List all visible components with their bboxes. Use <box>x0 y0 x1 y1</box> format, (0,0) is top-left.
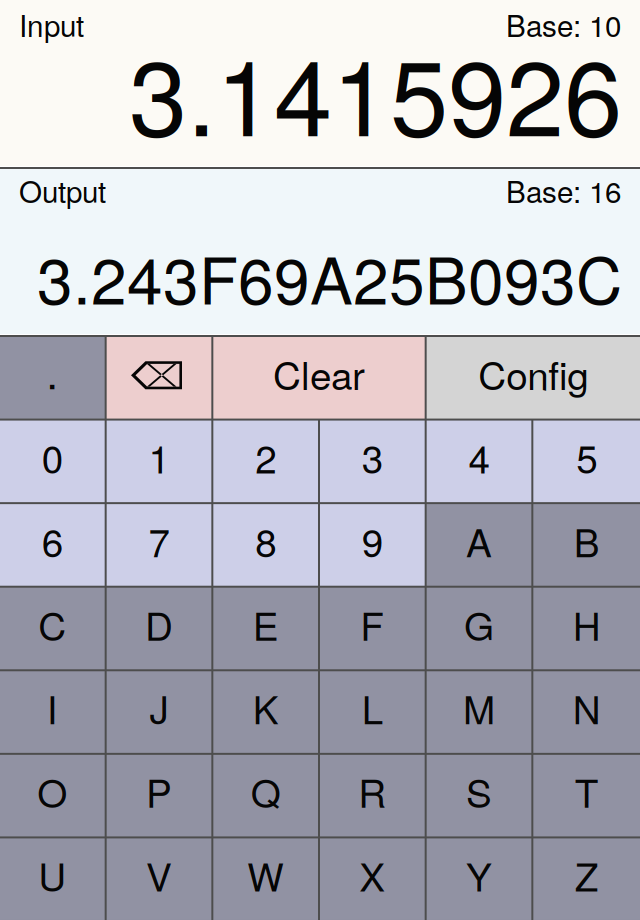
button[interactable]: O <box>0 755 105 836</box>
button[interactable]: I <box>0 671 105 753</box>
button[interactable]: W <box>213 838 318 920</box>
button[interactable]: . <box>0 337 105 419</box>
staticText: W <box>247 847 284 902</box>
button[interactable]: 5 <box>533 421 640 502</box>
staticText: T <box>575 763 599 819</box>
staticText: C <box>38 596 66 652</box>
button[interactable]: U <box>0 838 105 920</box>
button[interactable]: Y <box>427 838 531 920</box>
staticText: P <box>146 763 172 819</box>
staticText: 5 <box>576 429 597 485</box>
staticText: 3.1415926 <box>129 16 622 166</box>
button[interactable]: C <box>0 588 105 669</box>
staticText: B <box>574 513 600 568</box>
button[interactable]: 7 <box>107 504 211 586</box>
staticText: Clear <box>273 346 365 401</box>
staticText: 1 <box>148 429 169 485</box>
button[interactable]: M <box>427 671 531 753</box>
button[interactable]: P <box>107 755 211 836</box>
staticText: F <box>360 596 384 652</box>
staticText: V <box>146 847 172 902</box>
staticText: Output <box>19 169 106 211</box>
button[interactable]: Base: 10 <box>506 3 621 45</box>
staticText: K <box>253 680 279 735</box>
button[interactable]: G <box>427 588 531 669</box>
staticText: A <box>466 513 492 568</box>
staticText: Y <box>466 847 492 902</box>
staticText: 2 <box>255 429 276 485</box>
button[interactable]: Base: 16 <box>506 169 621 211</box>
button[interactable]: 3 <box>320 421 425 502</box>
staticText: O <box>37 763 67 819</box>
staticText: 4 <box>468 429 489 485</box>
button[interactable]: R <box>320 755 425 836</box>
staticText: U <box>38 847 66 902</box>
staticText: D <box>145 596 173 652</box>
staticText: Z <box>575 847 599 902</box>
button[interactable]: H <box>533 588 640 669</box>
staticText: H <box>573 596 601 652</box>
staticText: 3 <box>362 429 383 485</box>
staticText: Config <box>478 346 588 401</box>
button[interactable]: Clear <box>213 337 425 419</box>
staticText: 9 <box>362 513 383 568</box>
button[interactable]: X <box>320 838 425 920</box>
staticText: L <box>362 680 383 735</box>
staticText: M <box>463 680 495 735</box>
staticText: 7 <box>148 513 169 568</box>
staticText: Input <box>19 3 84 45</box>
staticText: Base: 10 <box>506 3 621 45</box>
button[interactable]: F <box>320 588 425 669</box>
button[interactable]: 8 <box>213 504 318 586</box>
staticText: R <box>358 763 386 819</box>
staticText: N <box>573 680 601 735</box>
button[interactable]: 0 <box>0 421 105 502</box>
button[interactable]: E <box>213 588 318 669</box>
staticText: 6 <box>42 513 63 568</box>
staticText: . <box>46 340 58 401</box>
button[interactable]: B <box>533 504 640 586</box>
button[interactable]: J <box>107 671 211 753</box>
button[interactable]: T <box>533 755 640 836</box>
button[interactable]: A <box>427 504 531 586</box>
button[interactable]: 4 <box>427 421 531 502</box>
staticText: Base: 16 <box>506 169 621 211</box>
button[interactable]: 2 <box>213 421 318 502</box>
button[interactable]: S <box>427 755 531 836</box>
staticText: G <box>464 596 494 652</box>
button[interactable]: K <box>213 671 318 753</box>
staticText: 3.243F69A25B093C <box>37 231 622 323</box>
button[interactable]: L <box>320 671 425 753</box>
button[interactable]: N <box>533 671 640 753</box>
button[interactable]: Q <box>213 755 318 836</box>
staticText: I <box>47 680 58 735</box>
button[interactable]: Backspace <box>107 337 211 419</box>
staticText: J <box>149 680 168 735</box>
button[interactable]: Z <box>533 838 640 920</box>
button[interactable]: 1 <box>107 421 211 502</box>
button[interactable]: V <box>107 838 211 920</box>
staticText: 0 <box>42 429 63 485</box>
staticText: S <box>466 763 492 819</box>
button[interactable]: Config <box>427 337 640 419</box>
button[interactable]: 9 <box>320 504 425 586</box>
button[interactable]: 6 <box>0 504 105 586</box>
staticText: X <box>359 847 385 902</box>
staticText: 8 <box>255 513 276 568</box>
staticText: Q <box>251 763 281 819</box>
staticText: E <box>253 596 279 652</box>
button[interactable]: D <box>107 588 211 669</box>
